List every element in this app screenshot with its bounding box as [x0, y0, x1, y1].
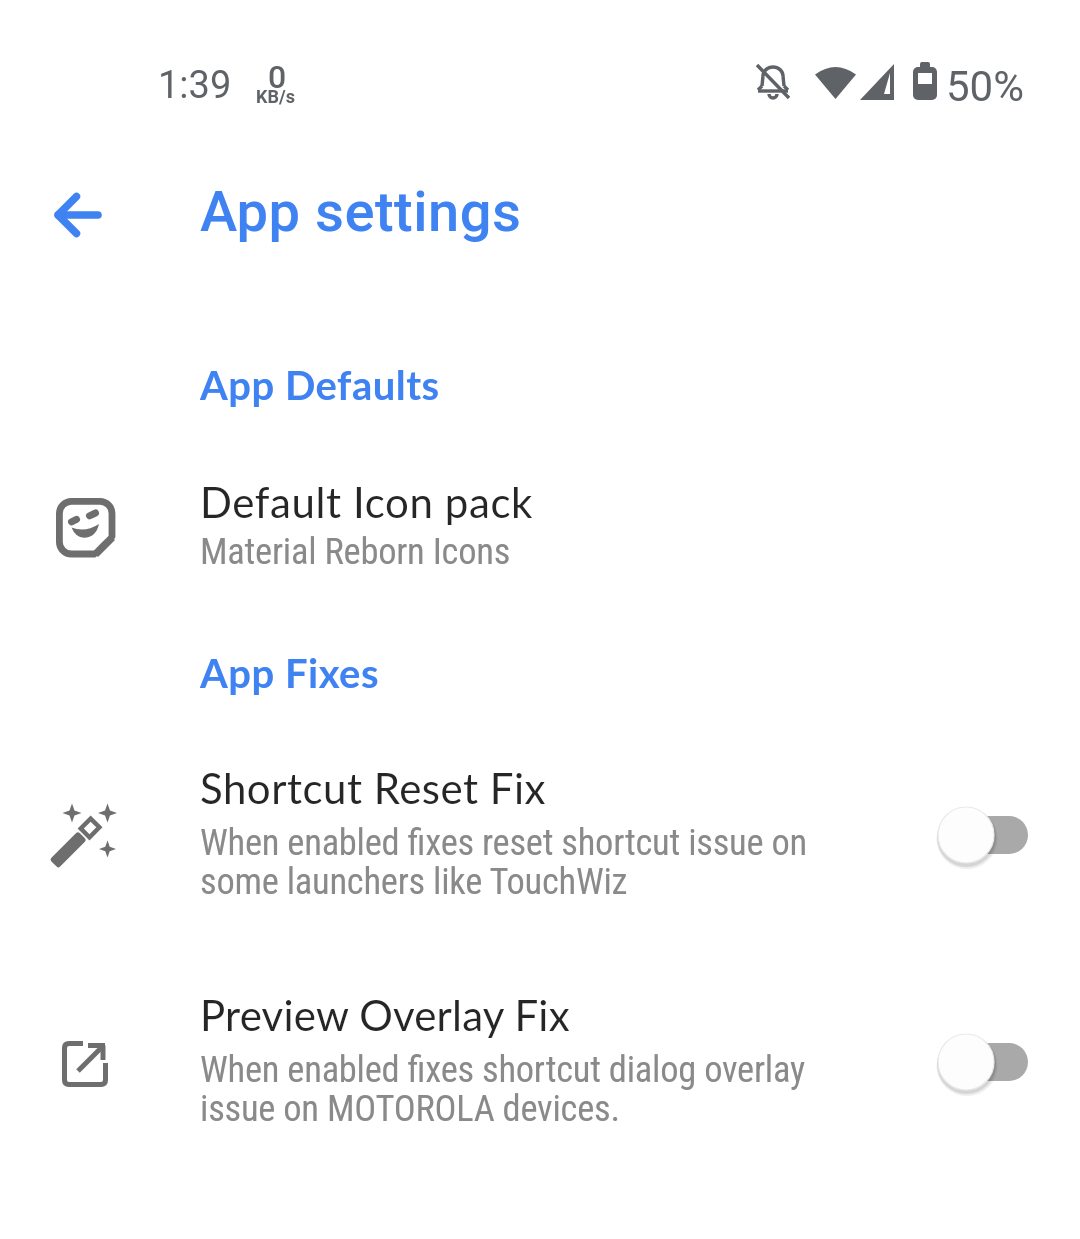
- staticText: When enabled fixes reset shortcut issue …: [200, 821, 807, 903]
- staticText: 50%: [946, 62, 1024, 111]
- staticText: 0: [268, 58, 287, 96]
- button[interactable]: Preview Overlay Fix: [0, 975, 1080, 1160]
- button[interactable]: Shortcut Reset Fix: [0, 745, 1080, 930]
- button[interactable]: [43, 181, 111, 249]
- staticText: 1:39: [158, 63, 232, 108]
- button[interactable]: [930, 800, 1036, 870]
- staticText: When enabled fixes shortcut dialog overl…: [200, 1048, 805, 1130]
- staticText: Material Reborn Icons: [200, 530, 511, 573]
- staticText: App settings: [200, 179, 522, 245]
- staticText: Preview Overlay Fix: [200, 990, 570, 1040]
- staticText: Default Icon pack: [200, 477, 534, 527]
- staticText: App Defaults: [200, 361, 440, 409]
- button[interactable]: [930, 1027, 1036, 1097]
- staticText: KB/s: [256, 86, 295, 107]
- staticText: App Fixes: [200, 649, 380, 697]
- button[interactable]: Default Icon pack: [0, 455, 1080, 590]
- staticText: Shortcut Reset Fix: [200, 763, 547, 813]
